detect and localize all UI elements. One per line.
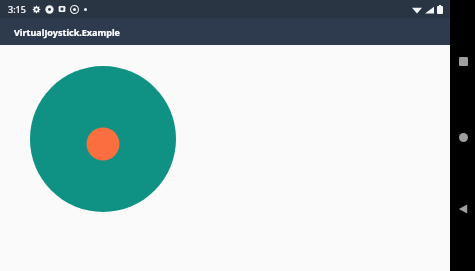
button[interactable]: Home [452,126,474,148]
button[interactable]: Virtual joystick [30,66,176,212]
staticText: 3:15 [8,3,26,15]
staticText: VirtualJoystick.Example [14,26,120,38]
button[interactable]: Back [452,198,474,220]
button[interactable]: VirtualJoystick.Example [0,18,450,45]
button[interactable]: Recent apps [452,50,474,72]
